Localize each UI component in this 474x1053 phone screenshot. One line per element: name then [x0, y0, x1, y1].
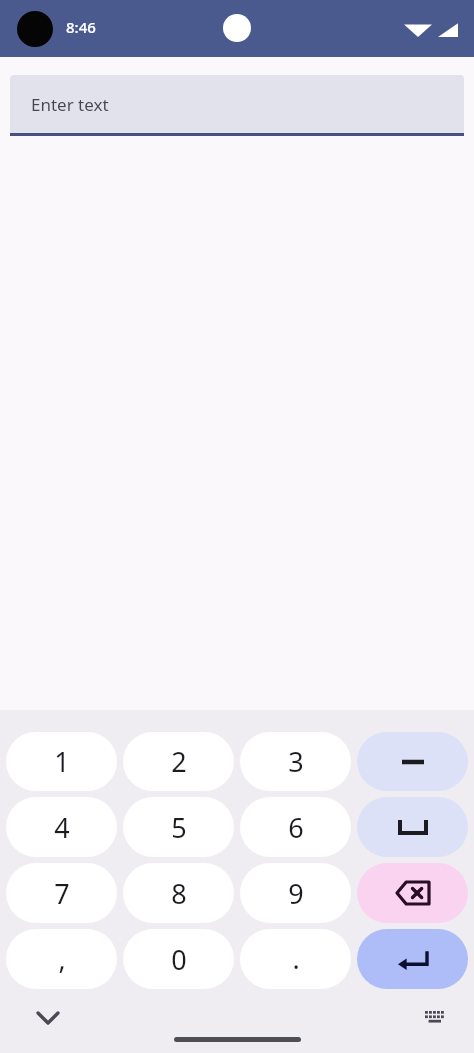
- button[interactable]: 4: [6, 797, 117, 857]
- staticText: 6: [288, 809, 304, 846]
- staticText: Enter text: [31, 93, 109, 116]
- staticText: 9: [288, 875, 304, 912]
- button[interactable]: Enter text: [10, 75, 464, 133]
- button[interactable]: Backspace: [357, 863, 468, 923]
- button[interactable]: 3: [240, 732, 351, 791]
- staticText: .: [292, 940, 300, 977]
- button[interactable]: Hide keyboard: [28, 998, 68, 1038]
- staticText: 3: [288, 743, 304, 780]
- staticText: 1: [54, 743, 70, 780]
- button[interactable]: Enter: [357, 929, 468, 989]
- button[interactable]: 6: [240, 797, 351, 857]
- staticText: 7: [54, 875, 70, 912]
- button[interactable]: 0: [123, 929, 234, 989]
- button[interactable]: 9: [240, 863, 351, 923]
- button[interactable]: 5: [123, 797, 234, 857]
- button[interactable]: Minus: [357, 732, 468, 791]
- button[interactable]: 8: [123, 863, 234, 923]
- staticText: 2: [171, 743, 187, 780]
- button[interactable]: Switch keyboard: [416, 999, 454, 1037]
- button[interactable]: 2: [123, 732, 234, 791]
- staticText: 4: [54, 809, 70, 846]
- staticText: ,: [58, 940, 66, 977]
- button[interactable]: .: [240, 929, 351, 989]
- button[interactable]: Space: [357, 797, 468, 857]
- staticText: 8: [171, 875, 187, 912]
- staticText: 5: [171, 809, 187, 846]
- staticText: 0: [171, 941, 187, 978]
- button[interactable]: 7: [6, 863, 117, 923]
- button[interactable]: ,: [6, 929, 117, 989]
- staticText: 8:46: [66, 17, 96, 37]
- button[interactable]: 1: [6, 732, 117, 791]
